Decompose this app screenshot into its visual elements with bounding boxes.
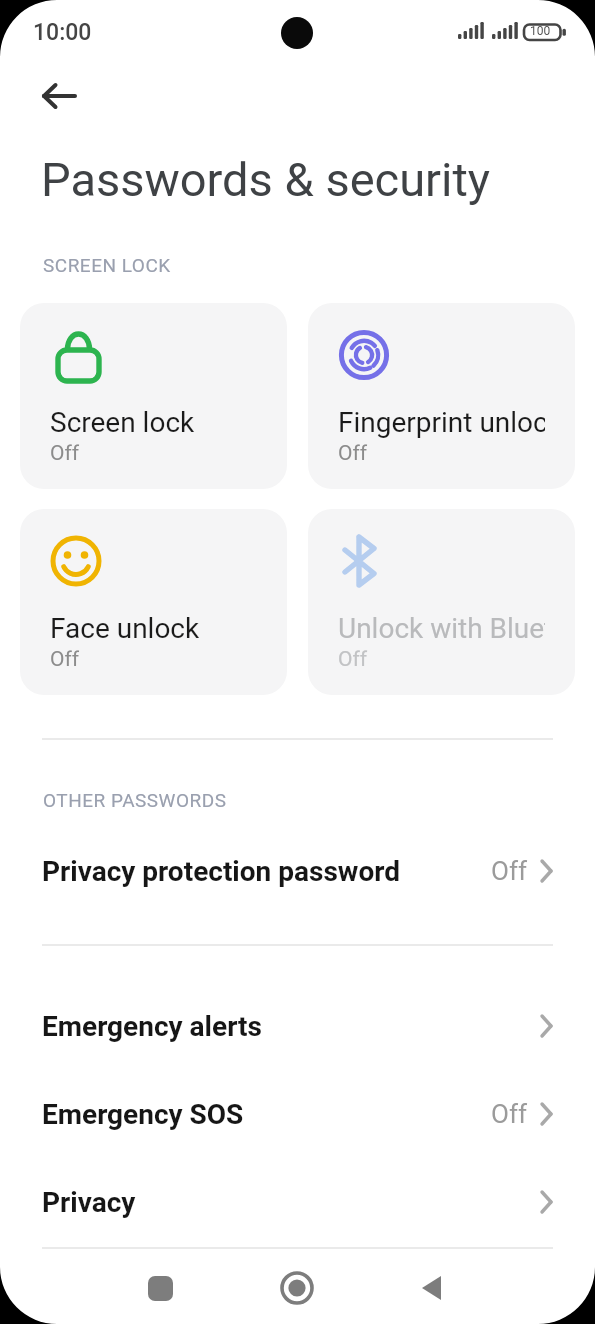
staticText: 100 — [530, 24, 551, 38]
staticText: Unlock with Bluetooth device — [338, 612, 545, 645]
button[interactable]: Unlock with Bluetooth device — [308, 509, 575, 695]
staticText: Off — [491, 856, 527, 886]
staticText: Screen lock — [50, 406, 195, 439]
button[interactable]: Fingerprint unlock — [308, 303, 575, 489]
staticText: Emergency alerts — [42, 1010, 262, 1043]
button[interactable] — [410, 1266, 454, 1310]
staticText: Passwords & security — [41, 152, 491, 207]
staticText: SCREEN LOCK — [43, 254, 171, 276]
staticText: Off — [338, 441, 368, 466]
staticText: Fingerprint unlock — [338, 406, 545, 439]
button[interactable]: Privacy — [0, 1158, 595, 1246]
button[interactable]: Emergency alerts — [0, 982, 595, 1070]
staticText: 10:00 — [33, 19, 92, 46]
staticText: Off — [50, 647, 80, 672]
staticText: Privacy — [42, 1186, 136, 1219]
button[interactable]: Emergency SOS — [0, 1070, 595, 1158]
staticText: Privacy protection password — [42, 855, 401, 888]
staticText: Off — [338, 647, 368, 672]
staticText: Face unlock — [50, 612, 200, 645]
button[interactable] — [138, 1266, 182, 1310]
staticText: Emergency SOS — [42, 1098, 244, 1131]
button[interactable]: Face unlock — [20, 509, 287, 695]
staticText: Off — [50, 441, 80, 466]
button[interactable] — [34, 72, 82, 120]
staticText: OTHER PASSWORDS — [43, 789, 227, 811]
button[interactable]: Privacy protection password — [0, 827, 595, 915]
staticText: Off — [491, 1099, 527, 1129]
button[interactable] — [275, 1266, 319, 1310]
button[interactable]: Screen lock — [20, 303, 287, 489]
